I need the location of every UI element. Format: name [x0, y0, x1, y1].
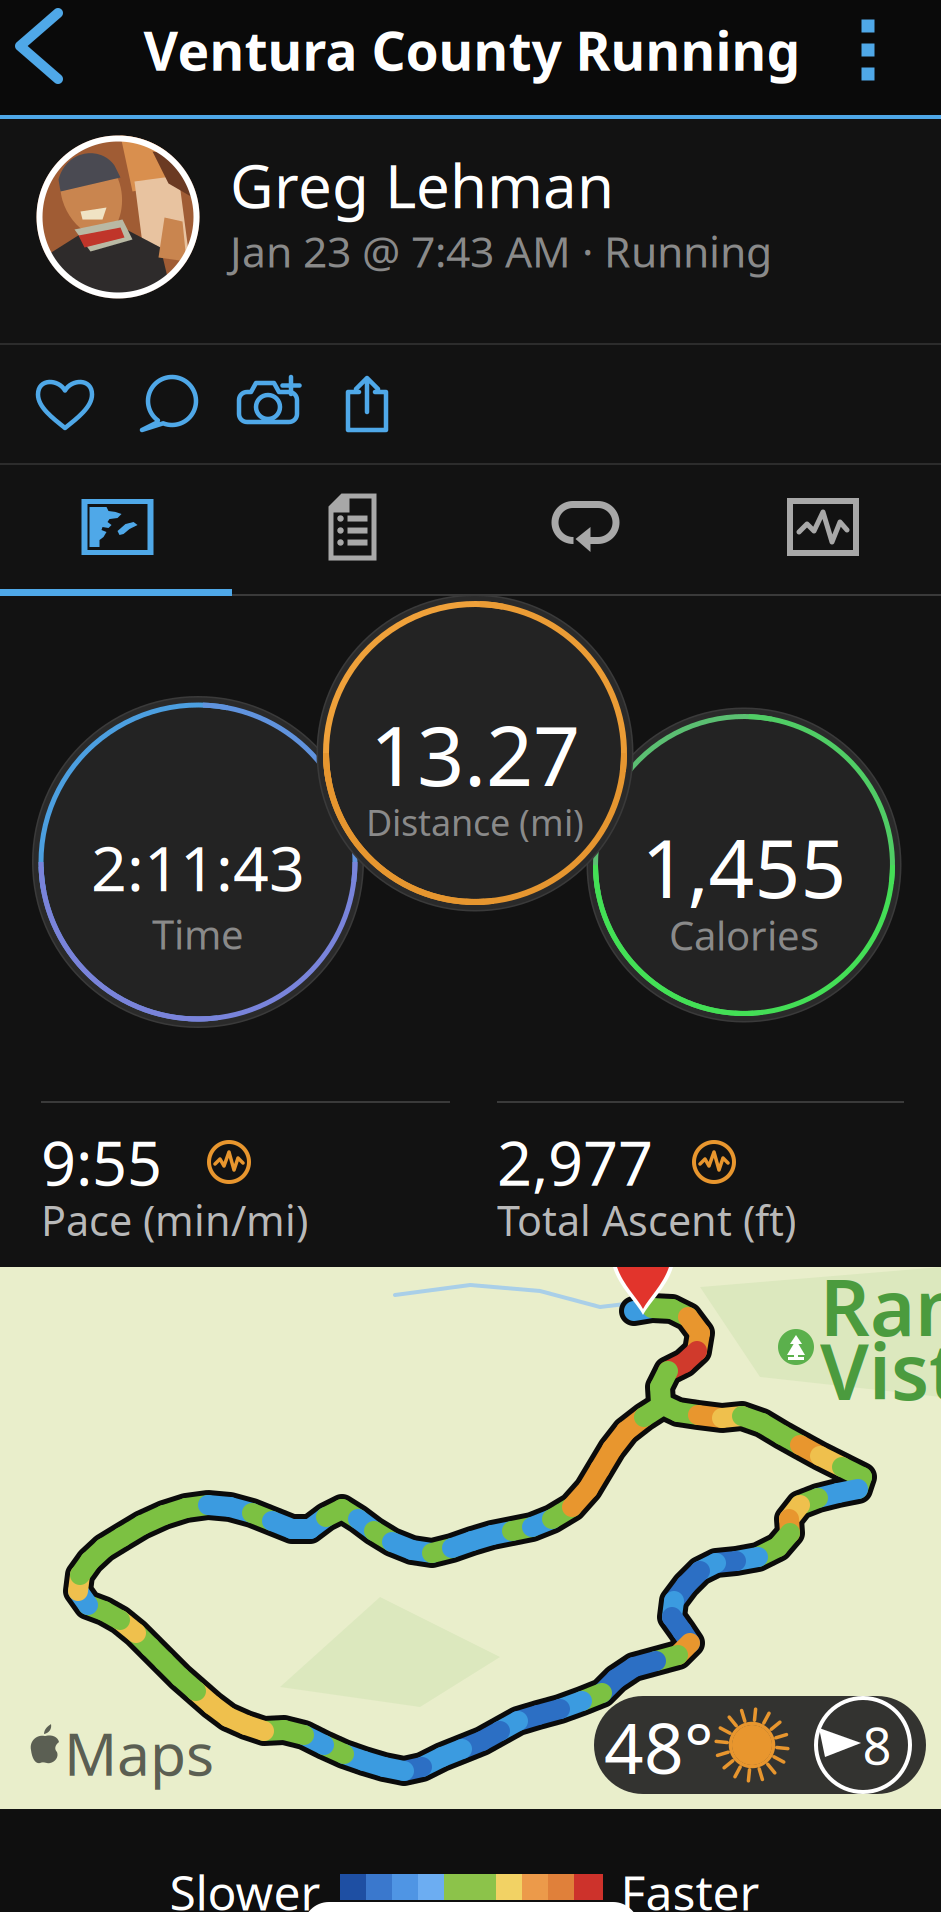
button[interactable]: Comment	[119, 345, 219, 463]
button[interactable]: Map	[0, 465, 235, 589]
staticText: Time	[152, 907, 244, 960]
button[interactable]: Profile photo	[36, 135, 199, 298]
staticText: Ran	[820, 1255, 941, 1357]
staticText: Distance (mi)	[366, 798, 584, 846]
staticText: 13.27	[370, 699, 580, 809]
staticText: Ventura County Running	[143, 15, 800, 85]
button[interactable]: Details	[235, 465, 470, 589]
button[interactable]: Like	[15, 345, 115, 463]
button[interactable]: Graphs	[705, 465, 941, 589]
staticText: Vist	[820, 1319, 941, 1421]
button[interactable]: Add photo	[219, 345, 319, 463]
staticText: Faster	[620, 1860, 759, 1912]
staticText: Jan 23 @ 7:43 AM · Running	[230, 223, 772, 279]
staticText: Pace (min/mi)	[41, 1193, 308, 1247]
button[interactable]: Share	[317, 345, 417, 463]
button[interactable]: Back	[0, 0, 95, 102]
staticText: Greg Lehman	[230, 145, 614, 225]
button[interactable]: Laps	[470, 465, 705, 589]
staticText: 8	[862, 1711, 891, 1779]
staticText: 2,977	[497, 1121, 653, 1203]
staticText: Slower	[169, 1860, 320, 1912]
staticText: 1,455	[641, 814, 846, 920]
staticText: Calories	[669, 908, 819, 961]
staticText: Maps	[64, 1714, 214, 1792]
button[interactable]: More options	[808, 0, 928, 106]
staticText: Total Ascent (ft)	[497, 1193, 796, 1247]
staticText: 48°	[604, 1701, 714, 1793]
staticText: 2:11:43	[91, 825, 305, 909]
staticText: 9:55	[41, 1121, 162, 1203]
